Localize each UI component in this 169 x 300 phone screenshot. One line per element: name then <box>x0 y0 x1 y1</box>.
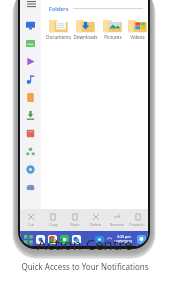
button[interactable]: Documents <box>45 17 72 40</box>
button[interactable]: Menu <box>24 0 38 11</box>
button[interactable]: Paste <box>64 209 85 231</box>
staticText: Delete <box>90 222 101 227</box>
button[interactable]: Search <box>34 233 46 245</box>
staticText: Pictures <box>104 34 122 40</box>
staticText: Action Centre <box>37 234 133 254</box>
staticText: Documents <box>46 34 71 40</box>
button[interactable]: Downloads <box>72 17 99 40</box>
button[interactable]: Cut <box>20 209 42 231</box>
button[interactable]: Phone <box>58 233 70 245</box>
button[interactable]: Sidebar item 1 <box>20 34 41 52</box>
staticText: 3:23 pm <box>117 234 131 239</box>
button[interactable]: Sidebar item 9 <box>20 178 41 196</box>
staticText: Properti... <box>129 222 146 227</box>
button[interactable]: Delete <box>85 209 106 231</box>
staticText: Quick Access to Your Notifications <box>21 261 149 272</box>
button[interactable]: Rename <box>106 209 127 231</box>
staticText: Videos <box>130 34 145 40</box>
button[interactable]: Tray <box>93 233 105 245</box>
staticText: Copy <box>49 222 58 227</box>
button[interactable]: Sidebar item 3 <box>20 70 41 88</box>
button[interactable]: Messages <box>70 233 82 245</box>
button[interactable]: Sidebar item 5 <box>20 106 41 124</box>
staticText: Paste <box>70 222 80 227</box>
staticText: Rename <box>110 222 124 227</box>
button[interactable]: Sidebar item 0 <box>20 16 41 34</box>
button[interactable]: Videos <box>126 17 148 40</box>
button[interactable]: Sidebar item 4 <box>20 88 41 106</box>
button[interactable]: Sidebar item 7 <box>20 142 41 160</box>
staticText: Cut <box>28 222 34 227</box>
button[interactable]: Chrome <box>46 233 58 245</box>
button[interactable]: Sidebar item 8 <box>20 160 41 178</box>
staticText: 06/09/2023 <box>114 239 133 244</box>
button[interactable]: Start <box>22 233 34 245</box>
button[interactable]: Pictures <box>99 17 126 40</box>
button[interactable]: Sidebar item 6 <box>20 124 41 142</box>
staticText: Downloads <box>73 34 98 40</box>
button[interactable]: Notifications <box>135 233 147 245</box>
button[interactable]: Copy <box>42 209 64 231</box>
staticText: Folders <box>49 5 69 12</box>
button[interactable]: Properti... <box>127 209 148 231</box>
button[interactable]: Sidebar item 2 <box>20 52 41 70</box>
